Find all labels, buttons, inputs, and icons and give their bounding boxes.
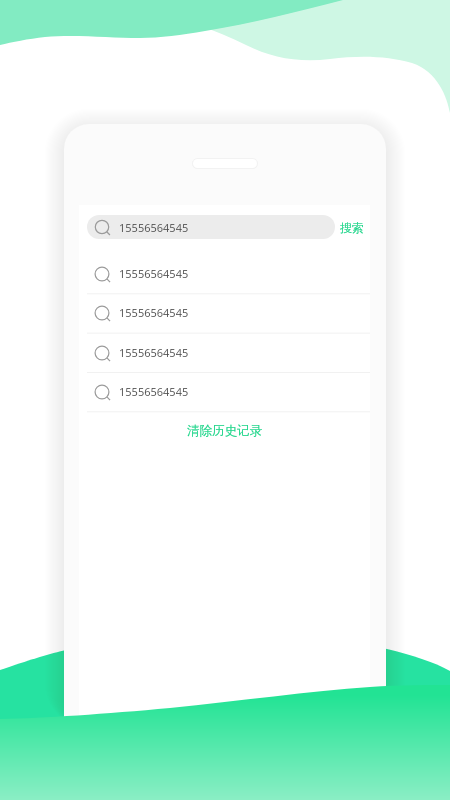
button[interactable]: Search	[79, 254, 370, 293]
button[interactable]: Search	[79, 372, 370, 411]
other: Search	[92, 382, 112, 402]
staticText: 搜索	[340, 220, 364, 235]
staticText: 15556564545	[119, 345, 189, 360]
staticText: 清除历史记录	[187, 423, 262, 439]
other: Search	[92, 343, 112, 363]
button[interactable]: Search	[79, 333, 370, 372]
button[interactable]: Search	[87, 215, 335, 239]
button[interactable]: 搜索	[335, 215, 369, 239]
staticText: 15556564545	[119, 305, 189, 320]
other: Search	[92, 264, 112, 284]
staticText: 15556564545	[119, 220, 189, 235]
other: Search	[92, 217, 112, 237]
other: Search	[92, 303, 112, 323]
staticText: 15556564545	[119, 266, 189, 281]
staticText: 15556564545	[119, 384, 189, 399]
button[interactable]: 清除历史记录	[177, 418, 272, 444]
button[interactable]: Search	[79, 293, 370, 332]
